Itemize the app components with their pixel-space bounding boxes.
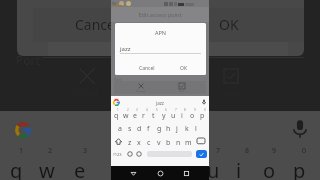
staticText: Cancel [75,15,119,34]
staticText: m [185,138,192,148]
staticText: u [171,111,176,121]
staticText: l [195,124,197,134]
other: Recents [183,170,190,177]
staticText: Save [179,90,185,92]
staticText: p [200,111,205,121]
staticText: 1 [19,146,24,156]
staticText: 2 [48,146,53,156]
staticText: 1 [117,108,119,112]
staticText: k [185,124,189,134]
staticText: OK [180,65,188,72]
staticText: w [123,111,129,121]
other: Home [157,170,164,177]
staticText: q [10,157,23,180]
staticText: 0 [204,108,206,112]
button[interactable]: Cancel [72,12,122,37]
button[interactable]: Cancel [137,63,157,74]
staticText: w [39,157,55,180]
staticText: 4 [146,108,148,112]
staticText: s [128,124,132,134]
staticText: 7 [175,108,177,112]
staticText: 7 [216,146,221,156]
staticText: z [128,138,132,148]
staticText: 8 [184,108,186,112]
button[interactable]: Discard [131,81,151,94]
staticText: 3 [83,146,88,156]
staticText: 2 [127,108,129,112]
other: Discard [80,69,94,83]
staticText: a [118,124,122,134]
button[interactable]: OK [178,63,190,74]
staticText: 5 [156,108,158,112]
staticText: t [152,111,155,121]
staticText: e [74,157,86,180]
staticText: e [133,111,137,121]
staticText: p [293,157,306,180]
staticText: b [166,138,171,148]
staticText: v [157,138,161,148]
staticText: 9 [272,146,277,156]
staticText: Port [114,77,121,82]
staticText: h [166,124,171,134]
staticText: o [263,157,276,180]
staticText: APN [115,29,206,36]
staticText: o [190,111,195,121]
staticText: n [176,138,181,148]
staticText: Edit access point [111,11,209,18]
staticText: x [137,138,141,148]
other: Back [130,170,137,177]
staticText: c [147,138,151,148]
staticText: 9 [194,108,196,112]
staticText: i [236,157,242,180]
staticText: jazz [111,100,209,106]
staticText: ?123 [113,152,122,157]
staticText: f [147,124,150,134]
staticText: 3 [136,108,138,112]
staticText: Discard [136,90,146,92]
staticText: j [176,124,178,134]
staticText: 6 [165,108,167,112]
button[interactable]: Save [174,81,190,94]
staticText: i [181,111,183,121]
staticText: g [157,124,162,134]
staticText: d [137,124,142,134]
other: Backspace [197,138,205,146]
staticText: 0 [302,146,307,156]
staticText: q [114,111,119,121]
staticText: u [207,157,220,180]
staticText: OK [219,15,239,34]
button[interactable]: OK [216,12,242,37]
staticText: 8 [245,146,250,156]
staticText: Port [16,52,40,68]
staticText: jazz [120,45,131,53]
staticText: Cancel [139,65,155,72]
other: Voice input [289,118,311,140]
staticText: r [142,111,145,121]
staticText: y [162,111,166,121]
button[interactable]: Enter [196,150,207,158]
